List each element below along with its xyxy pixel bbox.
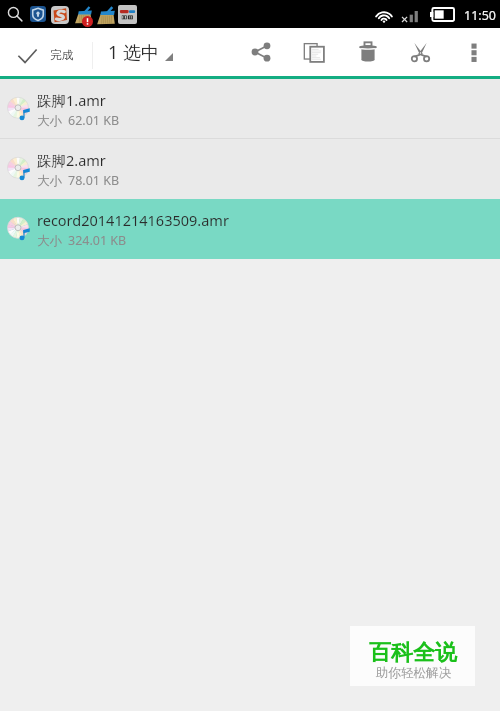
button[interactable]: record20141214163509.amr <box>0 199 500 259</box>
staticText: record20141214163509.amr <box>37 210 229 230</box>
button[interactable]: 1 选中 <box>93 40 187 65</box>
button[interactable]: Copy <box>294 32 334 72</box>
button[interactable]: Cut <box>400 32 440 72</box>
button[interactable]: 跺脚2.amr <box>0 139 500 199</box>
staticText: 助你轻松解决 <box>376 665 451 681</box>
staticText: 1 选中 <box>108 40 159 65</box>
staticText: 大小 <box>37 113 62 129</box>
staticText: 78.01 KB <box>68 172 120 189</box>
button[interactable]: Delete <box>348 32 388 72</box>
staticText: 跺脚1.amr <box>37 90 106 110</box>
button[interactable]: 完成 <box>0 46 92 60</box>
staticText: 跺脚2.amr <box>37 150 106 170</box>
staticText: 完成 <box>50 48 73 62</box>
staticText: 大小 <box>37 233 62 249</box>
button[interactable]: 跺脚1.amr <box>0 79 500 139</box>
staticText: 大小 <box>37 173 62 189</box>
staticText: 百科全说 <box>369 639 457 667</box>
staticText: 11:50 <box>464 7 496 24</box>
button[interactable]: More options <box>454 32 494 72</box>
staticText: 62.01 KB <box>68 112 120 129</box>
button[interactable]: Share <box>241 32 281 72</box>
staticText: 324.01 KB <box>68 232 127 249</box>
